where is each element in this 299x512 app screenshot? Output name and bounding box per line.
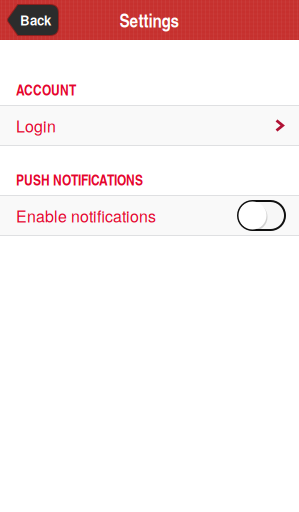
staticText: Settings bbox=[119, 7, 179, 33]
staticText: PUSH NOTIFICATIONS bbox=[16, 169, 143, 190]
button[interactable]: Enable notifications bbox=[238, 201, 285, 230]
staticText: Login bbox=[16, 114, 56, 137]
staticText: Enable notifications bbox=[16, 204, 156, 227]
button[interactable]: Login bbox=[0, 105, 299, 146]
staticText: Back bbox=[20, 10, 51, 30]
staticText: ACCOUNT bbox=[16, 79, 76, 100]
button[interactable]: Back bbox=[7, 5, 58, 35]
